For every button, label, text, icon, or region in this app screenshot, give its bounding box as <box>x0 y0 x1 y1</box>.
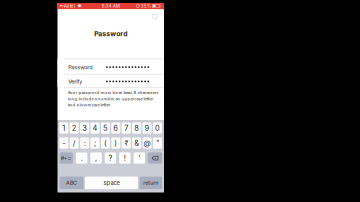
button[interactable]: 9 <box>0 0 360 202</box>
staticText: 7 <box>124 123 128 132</box>
button[interactable]: ) <box>0 0 360 202</box>
button[interactable]: Password <box>0 0 360 202</box>
button[interactable]: - <box>0 0 360 202</box>
staticText: 5 <box>103 123 108 132</box>
staticText: long, include a number, an uppercase let… <box>68 96 154 101</box>
button[interactable]: @ <box>0 0 360 202</box>
button[interactable]: 8 <box>0 0 360 202</box>
button[interactable]: ? <box>0 0 360 202</box>
staticText: ) <box>114 138 117 147</box>
staticText: 6:34 AM <box>102 3 120 9</box>
staticText: #+= <box>61 155 72 161</box>
button[interactable]: ₹ <box>0 0 360 202</box>
button[interactable]: 7 <box>0 0 360 202</box>
button[interactable]: ; <box>0 0 360 202</box>
button[interactable]: " <box>0 0 360 202</box>
staticText: ₹ <box>125 139 128 147</box>
staticText: space <box>103 179 119 186</box>
button[interactable]: 2 <box>0 0 360 202</box>
staticText: ! <box>124 153 126 162</box>
button[interactable]: Delete <box>0 0 360 202</box>
button[interactable]: ' <box>0 0 360 202</box>
staticText: - <box>62 138 65 147</box>
staticText: 6 <box>113 123 118 132</box>
staticText: ? <box>108 153 112 162</box>
staticText: Airtel <box>64 3 75 9</box>
button[interactable]: 5 <box>0 0 360 202</box>
button[interactable]: 6 <box>0 0 360 202</box>
staticText: and a lowercase letter. <box>68 102 111 107</box>
staticText: 3 <box>82 123 87 132</box>
staticText: @ <box>143 138 150 147</box>
staticText: 8 <box>134 123 139 132</box>
staticText: 9 <box>144 123 149 132</box>
staticText: Your password must be at least 8 charact… <box>68 90 159 95</box>
staticText: 35% <box>141 3 151 9</box>
button[interactable]: ! <box>0 0 360 202</box>
button[interactable]: return <box>0 0 360 202</box>
button[interactable]: Verify <box>0 0 360 202</box>
button[interactable]: : <box>0 0 360 202</box>
staticText: 4 <box>92 123 97 132</box>
staticText: Password <box>68 64 92 70</box>
button[interactable]: , <box>0 0 360 202</box>
button[interactable]: / <box>0 0 360 202</box>
button[interactable]: ABC <box>0 0 360 202</box>
button[interactable]: 3 <box>0 0 360 202</box>
staticText: ( <box>104 138 107 147</box>
staticText: return <box>143 180 158 186</box>
button[interactable]: 4 <box>0 0 360 202</box>
staticText: : <box>84 138 86 147</box>
button[interactable]: 0 <box>0 0 360 202</box>
staticText: " <box>156 138 159 147</box>
button[interactable]: . <box>0 0 360 202</box>
staticText: ABC <box>66 180 77 186</box>
staticText: Verify <box>68 78 82 85</box>
button[interactable]: ( <box>0 0 360 202</box>
staticText: / <box>73 138 76 147</box>
button[interactable]: 1 <box>0 0 360 202</box>
button[interactable]: #+= <box>0 0 360 202</box>
staticText: ' <box>138 153 140 162</box>
staticText: 2 <box>72 123 77 132</box>
staticText: ; <box>94 138 96 147</box>
staticText: 1 <box>62 123 65 132</box>
staticText: & <box>134 138 139 147</box>
staticText: . <box>81 153 83 162</box>
staticText: , <box>95 153 97 162</box>
staticText: 0 <box>155 123 160 132</box>
button[interactable]: space <box>0 0 360 202</box>
staticText: Password <box>94 30 127 38</box>
button[interactable]: & <box>0 0 360 202</box>
